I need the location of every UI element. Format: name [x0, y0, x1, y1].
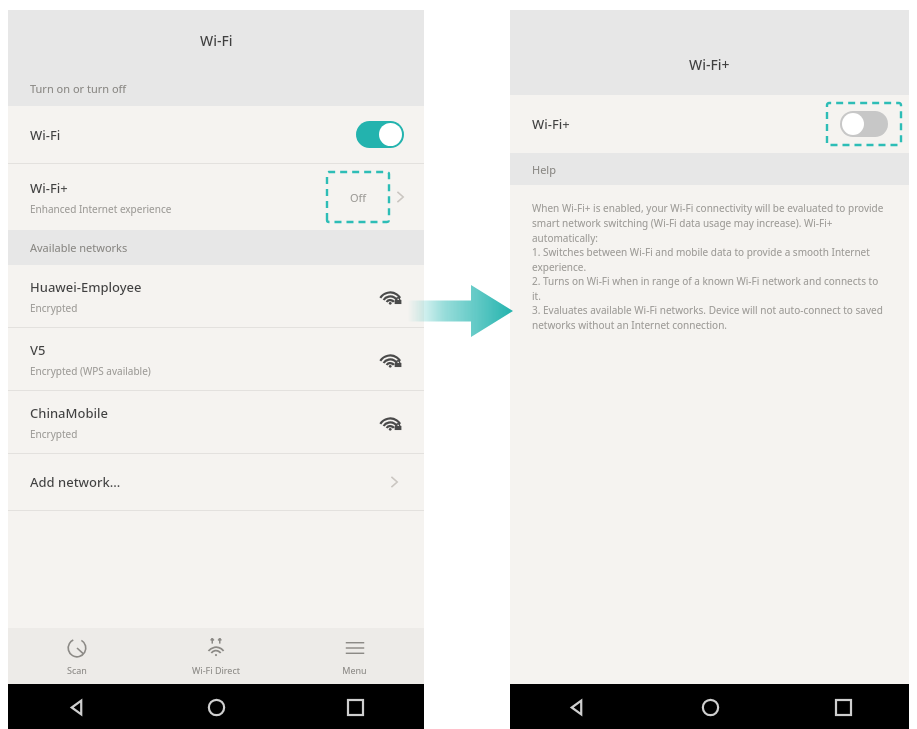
- staticText: Wi-Fi Direct: [192, 664, 240, 676]
- staticText: When Wi-Fi+ is enabled, your Wi-Fi conne…: [532, 201, 887, 245]
- staticText: Encrypted (WPS available): [30, 364, 151, 378]
- button[interactable]: Huawei-Employee: [8, 265, 424, 327]
- staticText: Available networks: [30, 240, 128, 255]
- staticText: Wi-Fi+: [689, 55, 730, 74]
- button[interactable]: Wi-Fi+: [8, 164, 424, 230]
- staticText: Off: [350, 190, 367, 205]
- button[interactable]: V5: [8, 328, 424, 390]
- button[interactable]: Recents: [828, 692, 858, 722]
- button[interactable]: Scan: [8, 628, 146, 684]
- staticText: Encrypted: [30, 301, 78, 315]
- staticText: Scan: [67, 664, 87, 676]
- button[interactable]: ChinaMobile: [8, 391, 424, 453]
- button[interactable]: Back: [62, 692, 92, 722]
- staticText: 2. Turns on Wi-Fi when in range of a kno…: [532, 274, 887, 303]
- staticText: Turn on or turn off: [30, 81, 127, 96]
- button[interactable]: Wi-Fi+ toggle off: [840, 111, 888, 137]
- button[interactable]: Back: [562, 692, 592, 722]
- button[interactable]: Wi-Fi Direct: [146, 628, 285, 684]
- button[interactable]: Wi-Fi: [8, 106, 424, 163]
- staticText: Wi-Fi+: [30, 179, 68, 197]
- staticText: Wi-Fi: [30, 126, 61, 144]
- button[interactable]: Recents: [340, 692, 370, 722]
- staticText: 1. Switches between Wi-Fi and mobile dat…: [532, 245, 887, 274]
- staticText: ChinaMobile: [30, 404, 108, 422]
- staticText: Help: [532, 162, 556, 177]
- button[interactable]: Home: [201, 692, 231, 722]
- button[interactable]: Home: [695, 692, 725, 722]
- button[interactable]: Wi-Fi+: [510, 95, 909, 153]
- staticText: V5: [30, 341, 46, 359]
- button[interactable]: Wi-Fi toggle on: [356, 121, 404, 148]
- staticText: 3. Evaluates available Wi-Fi networks. D…: [532, 303, 887, 332]
- staticText: Wi-Fi+: [532, 115, 570, 133]
- staticText: Encrypted: [30, 427, 78, 441]
- staticText: Wi-Fi: [200, 31, 233, 50]
- staticText: Huawei-Employee: [30, 278, 142, 296]
- staticText: Add network…: [30, 473, 121, 491]
- staticText: Menu: [342, 664, 367, 676]
- button[interactable]: Menu: [285, 628, 424, 684]
- staticText: Enhanced Internet experience: [30, 202, 172, 216]
- button[interactable]: Add network…: [8, 454, 424, 510]
